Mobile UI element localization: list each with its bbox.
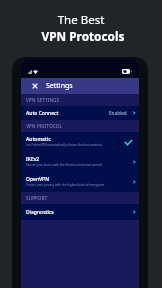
button[interactable]: Automatic (21, 132, 139, 152)
button[interactable]: OpenVPN (21, 172, 139, 192)
staticText: Diagnostics (26, 209, 54, 216)
staticText: Settings (46, 81, 73, 91)
staticText: OpenVPN (26, 176, 50, 183)
button[interactable]: Diagnostics (21, 204, 139, 220)
staticText: Secure your device with the fastest conn… (26, 163, 103, 167)
staticText: VPN SETTINGS (26, 97, 60, 103)
staticText: SUPPORT (26, 195, 48, 201)
staticText: Protect your privacy with the highest le… (26, 183, 105, 187)
button[interactable]: Auto Connect (21, 106, 139, 120)
staticText: Enabled (109, 110, 127, 116)
staticText: The Best (0, 12, 162, 28)
staticText: Automatic (26, 136, 51, 143)
staticText: Let ProtonVPN automatically choose the b… (26, 143, 102, 147)
button[interactable]: IKEv2 (21, 152, 139, 172)
staticText: VPN PROTOCOL (26, 123, 62, 129)
staticText: Auto Connect (26, 110, 59, 117)
button[interactable]: Close (29, 80, 41, 92)
staticText: IKEv2 (26, 156, 40, 163)
staticText: VPN Protocols (2, 28, 162, 44)
button[interactable]: Close (21, 78, 139, 94)
